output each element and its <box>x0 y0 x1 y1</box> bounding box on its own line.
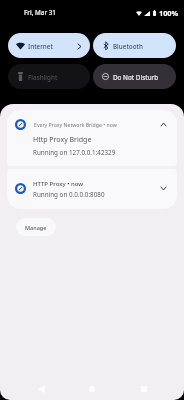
staticText: HTTP Proxy • now <box>33 180 84 188</box>
button[interactable]: Bluetooth <box>93 33 176 58</box>
button[interactable]: HTTP Proxy • now <box>7 169 177 209</box>
button[interactable]: Do Not Disturb <box>93 64 176 89</box>
button[interactable]: Back <box>30 378 52 400</box>
button[interactable]: Collapse notification <box>157 118 169 130</box>
staticText: Every Proxy Network Bridge • now <box>34 121 117 128</box>
staticText: Do Not Disturb <box>113 73 159 82</box>
staticText: Running on 0.0.0.0:8080 <box>33 190 105 199</box>
button[interactable]: Internet <box>8 33 90 58</box>
staticText: Fri, Mar 31 <box>24 8 56 17</box>
staticText: 100% <box>159 8 179 18</box>
staticText: Bluetooth <box>113 42 143 51</box>
button[interactable]: Recent apps <box>133 378 155 400</box>
staticText: Internet <box>28 42 53 51</box>
button[interactable]: Home <box>81 378 103 400</box>
staticText: Flashlight <box>28 73 58 82</box>
button[interactable]: Every Proxy Network Bridge • now <box>7 110 177 166</box>
button[interactable]: Flashlight <box>8 64 90 89</box>
button[interactable]: Expand notification <box>157 182 169 194</box>
staticText: Running on 127.0.0.1:42329 <box>33 148 116 157</box>
button[interactable]: Manage <box>16 218 56 236</box>
staticText: Manage <box>25 224 47 231</box>
staticText: Http Proxy Bridge <box>33 135 92 145</box>
